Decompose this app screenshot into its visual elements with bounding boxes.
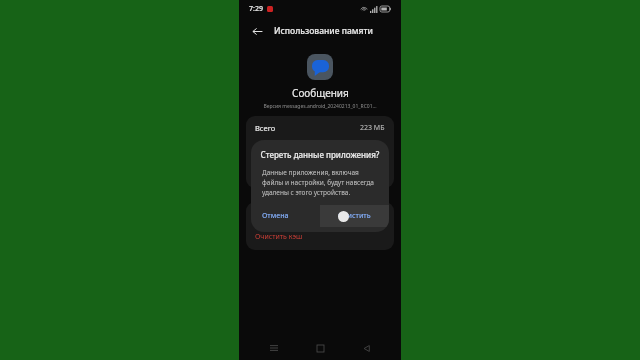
- button[interactable]: Back: [355, 337, 377, 359]
- staticText: 1,4 МБ: [362, 210, 385, 220]
- button[interactable]: Всего: [246, 116, 394, 188]
- staticText: 7:29: [249, 4, 263, 14]
- button[interactable]: Кэш: [246, 202, 394, 228]
- staticText: Данные приложения, включая файлы и настр…: [262, 168, 378, 197]
- button[interactable]: Очистить: [320, 205, 389, 227]
- staticText: Стереть данные приложения?: [259, 149, 381, 160]
- button[interactable]: Отмена: [251, 205, 320, 227]
- staticText: 223 МБ: [360, 123, 385, 133]
- staticText: Очистить: [338, 211, 371, 221]
- staticText: Версия messages.android_20240213_01_RC01…: [263, 103, 377, 110]
- staticText: Очистить кэш: [255, 232, 303, 242]
- button[interactable]: Очистить кэш: [246, 228, 394, 242]
- staticText: Всего: [255, 123, 276, 133]
- button[interactable]: Recents: [263, 337, 285, 359]
- button[interactable]: Home: [309, 337, 331, 359]
- staticText: Использование памяти: [274, 25, 373, 37]
- staticText: Сообщения: [292, 86, 349, 100]
- button[interactable]: Back: [247, 21, 267, 41]
- staticText: Кэш: [255, 210, 271, 220]
- staticText: Отмена: [262, 211, 289, 221]
